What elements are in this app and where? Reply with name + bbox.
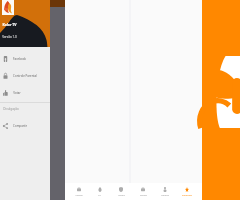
staticText: Favoritos	[182, 194, 192, 197]
button[interactable]: TV	[89, 183, 110, 200]
staticText: Canais	[75, 194, 83, 197]
button[interactable]: Canais	[68, 183, 89, 200]
button[interactable]: Controle Parental	[0, 67, 50, 84]
button[interactable]: Votar	[0, 84, 50, 101]
button[interactable]: Filmes	[132, 183, 154, 200]
button[interactable]: Facebook	[0, 50, 50, 67]
button[interactable]: Favoritos	[176, 183, 198, 200]
staticText: Controle Parental	[13, 74, 37, 78]
button[interactable]: Series	[110, 183, 132, 200]
staticText: Divulgação	[3, 107, 19, 111]
button[interactable]: Infantil	[154, 183, 176, 200]
staticText: TV	[98, 194, 101, 197]
staticText: Facebook	[13, 57, 26, 61]
staticText: Compartir	[13, 124, 27, 128]
button[interactable]: Compartir	[0, 117, 50, 134]
staticText: Filmes	[140, 194, 147, 197]
staticText: Versão 1.0	[2, 35, 17, 39]
staticText: Votar	[13, 91, 21, 95]
staticText: Series	[118, 194, 125, 197]
staticText: Infantil	[161, 194, 169, 197]
staticText: Kolor TV	[2, 22, 17, 27]
